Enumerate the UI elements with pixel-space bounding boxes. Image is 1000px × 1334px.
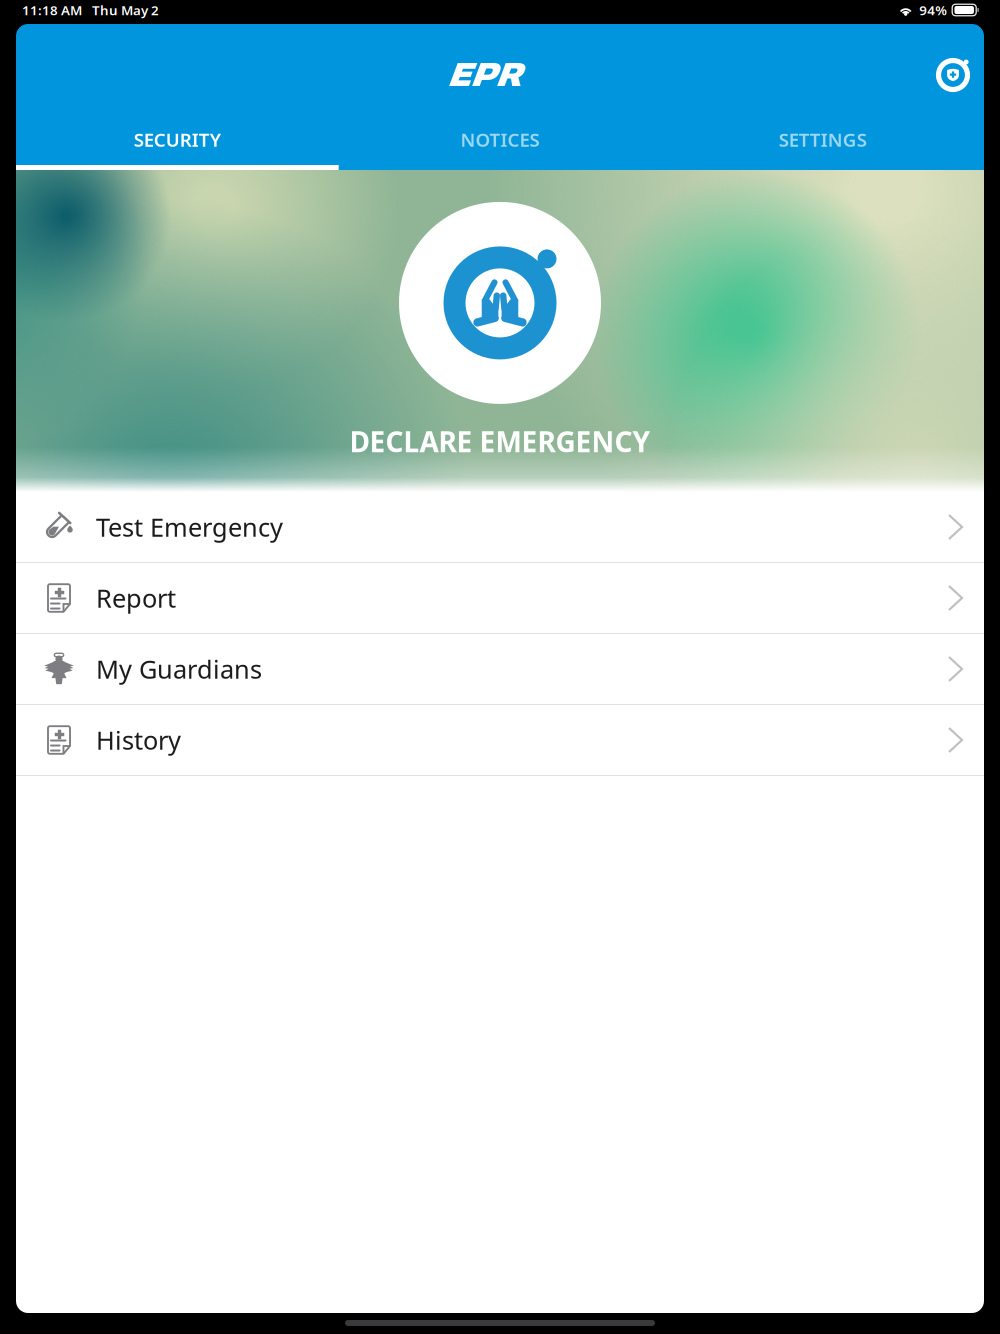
- staticText: NOTICES: [460, 127, 539, 152]
- button[interactable]: NOTICES: [339, 106, 661, 170]
- staticText: 11:18 AM: [22, 1, 82, 19]
- button[interactable]: DECLARE EMERGENCY: [349, 202, 650, 460]
- staticText: SECURITY: [134, 127, 221, 152]
- staticText: EPR: [449, 56, 523, 94]
- button[interactable]: SETTINGS: [661, 106, 984, 170]
- button[interactable]: History: [16, 705, 984, 776]
- button[interactable]: Account: [936, 58, 970, 92]
- staticText: Test Emergency: [96, 510, 283, 544]
- button[interactable]: My Guardians: [16, 634, 984, 705]
- staticText: SETTINGS: [779, 127, 867, 152]
- staticText: DECLARE EMERGENCY: [349, 423, 650, 460]
- staticText: My Guardians: [96, 652, 262, 686]
- button[interactable]: Report: [16, 563, 984, 634]
- staticText: Thu May 2: [92, 1, 159, 19]
- button[interactable]: SECURITY: [16, 106, 339, 170]
- button[interactable]: Test Emergency: [16, 492, 984, 563]
- staticText: Report: [96, 581, 176, 615]
- staticText: History: [96, 723, 181, 757]
- staticText: 94%: [919, 1, 947, 19]
